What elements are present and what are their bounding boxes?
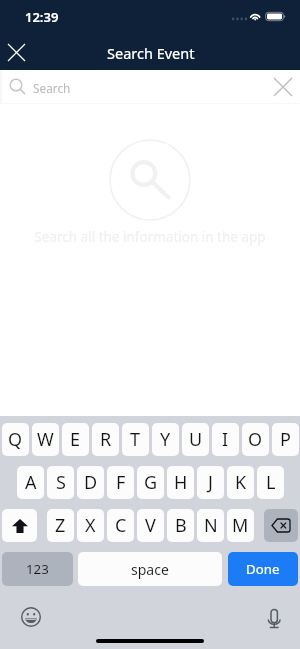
staticText: A xyxy=(25,470,37,495)
staticText: C xyxy=(115,513,127,538)
button[interactable]: 123 xyxy=(2,552,73,586)
button[interactable]: Shift xyxy=(2,509,37,542)
staticText: S xyxy=(56,470,66,495)
button[interactable]: X xyxy=(77,509,104,542)
staticText: Z xyxy=(55,513,66,538)
button[interactable]: C xyxy=(107,509,134,542)
staticText: T xyxy=(130,427,141,452)
staticText: Search all the information in the app xyxy=(34,228,266,246)
button[interactable]: L xyxy=(257,466,284,499)
button[interactable]: Dictation xyxy=(262,606,286,630)
button[interactable]: Done xyxy=(228,552,298,586)
staticText: 123 xyxy=(26,560,49,578)
button[interactable]: H xyxy=(167,466,194,499)
button[interactable]: V xyxy=(137,509,164,542)
button[interactable]: Y xyxy=(152,423,179,456)
button[interactable]: O xyxy=(242,423,269,456)
staticText: Y xyxy=(160,427,171,452)
staticText: B xyxy=(175,513,187,538)
button[interactable]: M xyxy=(227,509,254,542)
staticText: E xyxy=(70,427,81,452)
staticText: D xyxy=(84,470,98,495)
button[interactable]: Emoji keyboard xyxy=(19,605,43,629)
button[interactable]: T xyxy=(122,423,149,456)
staticText: N xyxy=(204,513,218,538)
staticText: J xyxy=(208,470,213,495)
staticText: space xyxy=(131,560,169,579)
button[interactable]: Z xyxy=(47,509,74,542)
button[interactable]: F xyxy=(107,466,134,499)
button[interactable]: S xyxy=(47,466,74,499)
staticText: W xyxy=(37,427,54,452)
staticText: L xyxy=(266,470,276,495)
button[interactable]: N xyxy=(197,509,224,542)
staticText: 12:39 xyxy=(25,8,59,26)
button[interactable]: Clear search xyxy=(270,74,296,100)
button[interactable]: space xyxy=(78,552,222,586)
staticText: Search xyxy=(33,80,71,96)
button[interactable]: K xyxy=(227,466,254,499)
staticText: X xyxy=(85,513,96,538)
button[interactable]: D xyxy=(77,466,104,499)
button[interactable]: Q xyxy=(2,423,29,456)
button[interactable]: P xyxy=(272,423,299,456)
staticText: Search Event xyxy=(107,43,195,63)
button[interactable]: E xyxy=(62,423,89,456)
staticText: R xyxy=(100,427,112,452)
staticText: K xyxy=(235,470,247,495)
button[interactable]: R xyxy=(92,423,119,456)
button[interactable]: U xyxy=(182,423,209,456)
staticText: O xyxy=(248,427,263,452)
button[interactable]: Search xyxy=(0,70,300,104)
button[interactable]: Backspace xyxy=(264,509,298,542)
staticText: H xyxy=(174,470,188,495)
button[interactable]: B xyxy=(167,509,194,542)
staticText: U xyxy=(189,427,203,452)
staticText: P xyxy=(280,427,291,452)
staticText: V xyxy=(145,513,156,538)
staticText: Q xyxy=(8,427,23,452)
button[interactable]: A xyxy=(17,466,44,499)
staticText: F xyxy=(116,470,126,495)
button[interactable]: W xyxy=(32,423,59,456)
staticText: G xyxy=(144,470,158,495)
button[interactable]: I xyxy=(212,423,239,456)
button[interactable]: G xyxy=(137,466,164,499)
staticText: Done xyxy=(246,560,280,578)
button[interactable]: J xyxy=(197,466,224,499)
staticText: I xyxy=(222,427,229,452)
button[interactable]: Close xyxy=(3,39,30,66)
staticText: M xyxy=(232,513,249,538)
